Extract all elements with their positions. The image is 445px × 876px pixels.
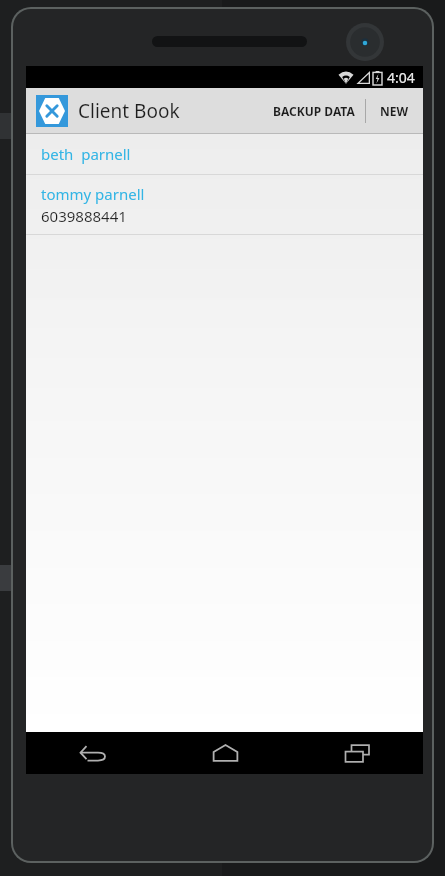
button[interactable]: tommy parnell — [26, 175, 423, 234]
staticText: beth parnell — [41, 144, 131, 164]
button[interactable]: Home — [159, 732, 291, 774]
other: App logo — [36, 95, 68, 127]
button[interactable]: BACKUP DATA — [263, 88, 365, 133]
staticText: 6039888441 — [41, 206, 127, 226]
staticText: NEW — [380, 103, 409, 119]
staticText: Client Book — [78, 98, 180, 124]
button[interactable]: beth parnell — [26, 134, 423, 174]
button[interactable]: Recent apps — [291, 732, 423, 774]
staticText: BACKUP DATA — [273, 103, 355, 119]
staticText: 4:04 — [387, 68, 415, 87]
button[interactable]: NEW — [366, 88, 423, 133]
button[interactable]: Back — [26, 732, 159, 774]
staticText: tommy parnell — [41, 184, 145, 204]
